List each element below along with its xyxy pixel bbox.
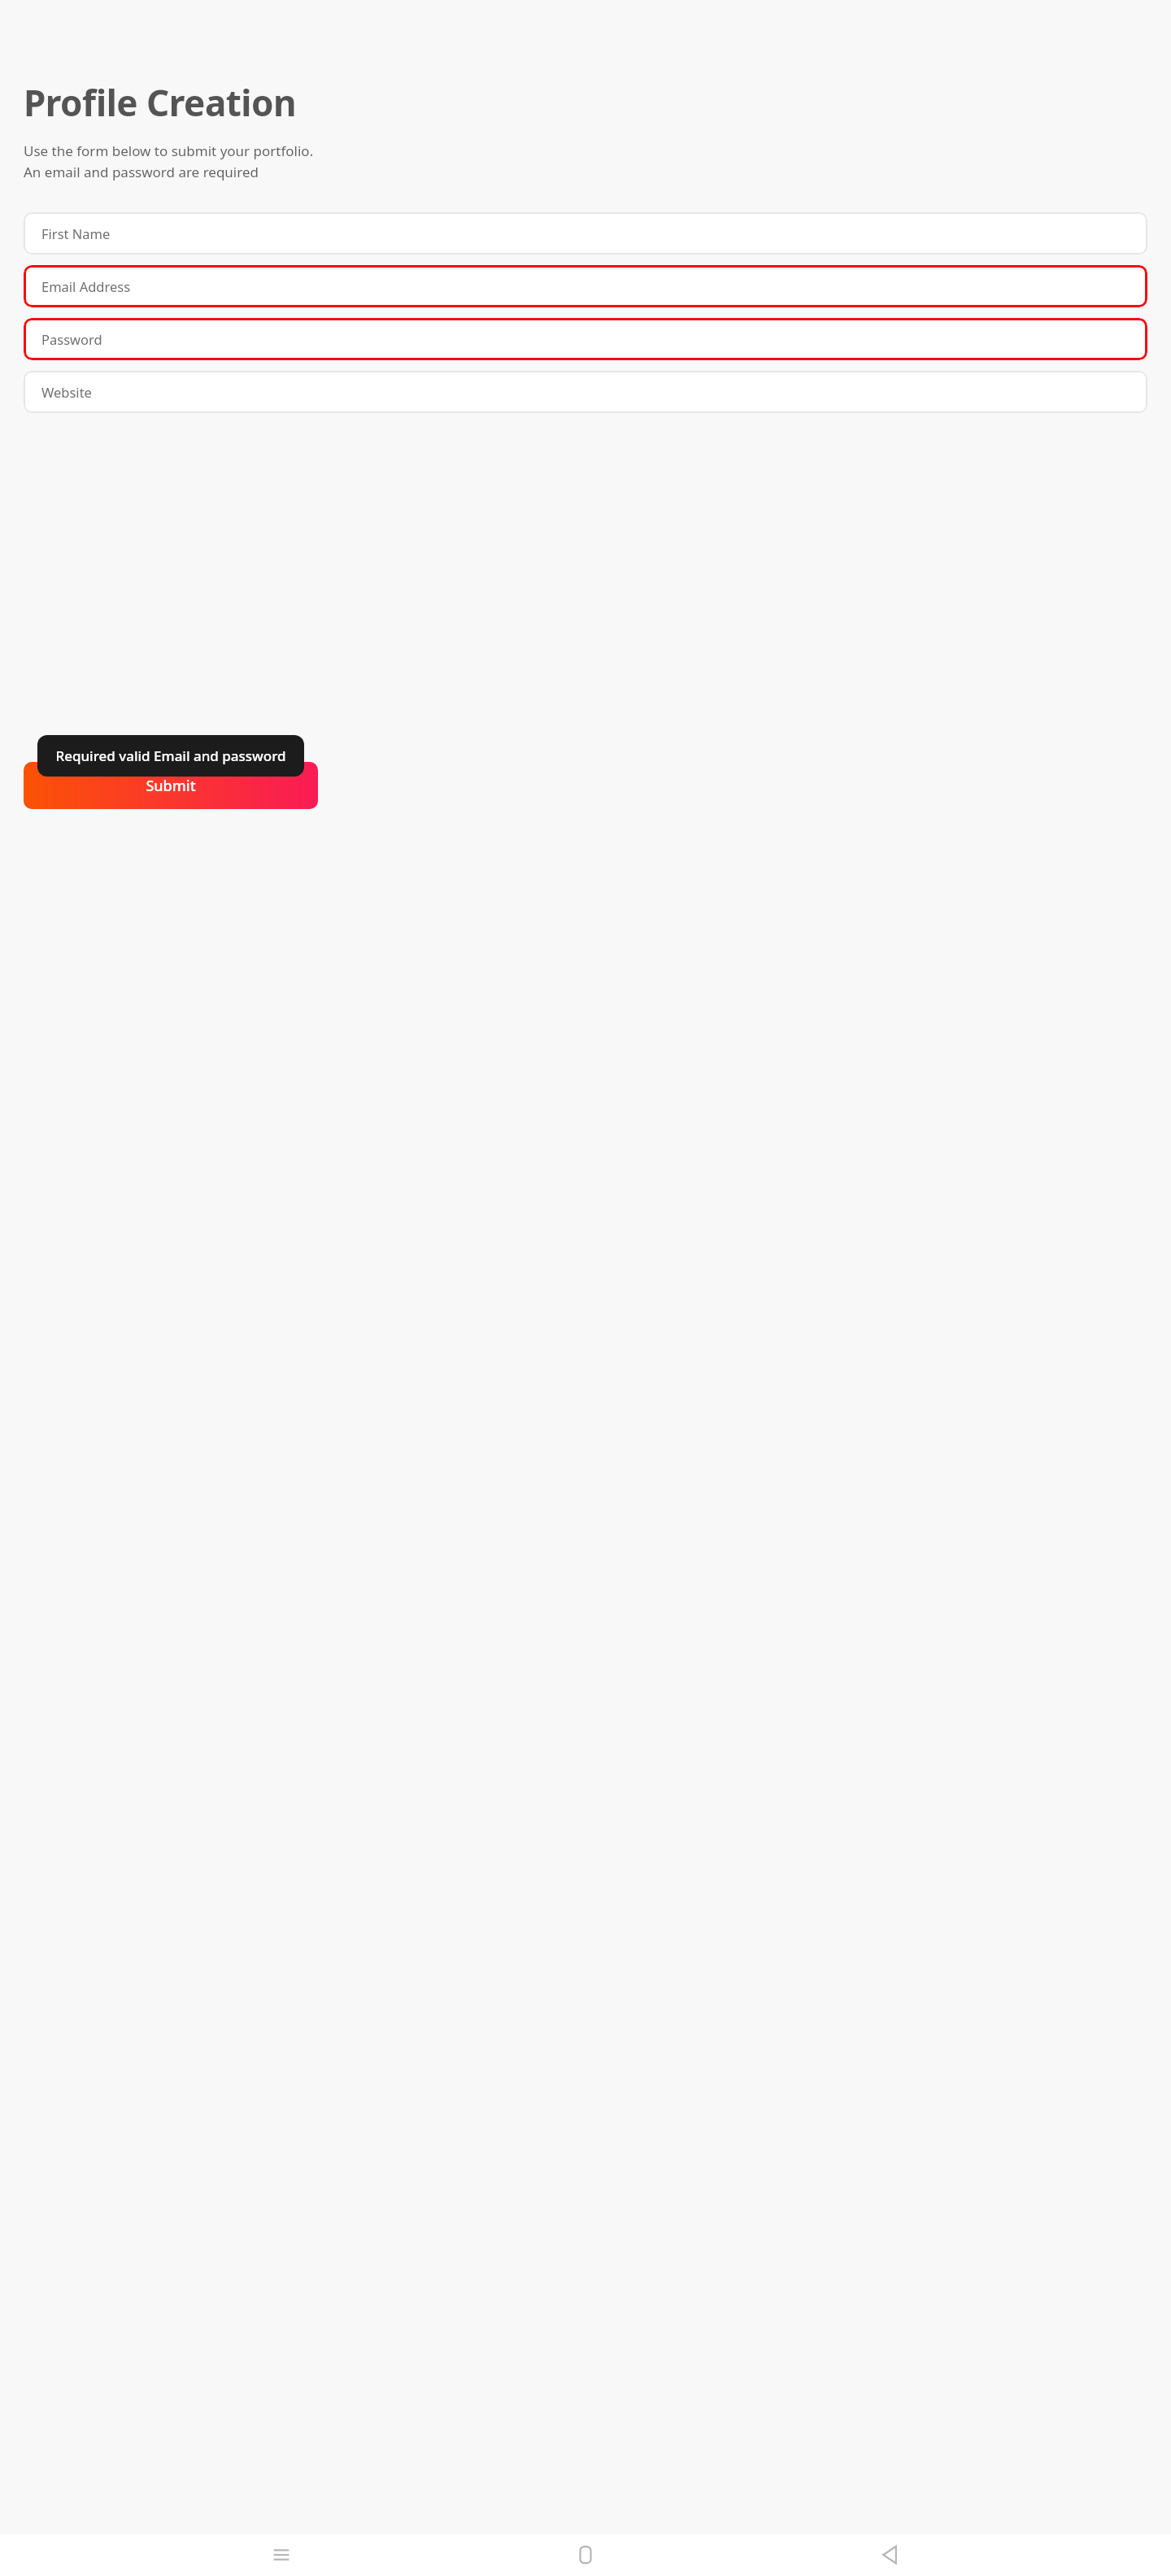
staticText: Profile Creation bbox=[24, 78, 297, 127]
button[interactable]: First Name bbox=[24, 212, 1147, 255]
button[interactable]: Submit bbox=[24, 762, 318, 809]
staticText: Email Address bbox=[41, 277, 131, 295]
button[interactable]: Recent apps bbox=[259, 2534, 304, 2576]
staticText: Password bbox=[41, 330, 102, 348]
staticText: Use the form below to submit your portfo… bbox=[24, 141, 314, 181]
button[interactable]: Home bbox=[563, 2534, 608, 2576]
button[interactable]: Password bbox=[24, 318, 1147, 360]
button[interactable]: Website bbox=[24, 371, 1147, 413]
staticText: Website bbox=[41, 383, 92, 401]
staticText: First Name bbox=[41, 224, 111, 242]
button[interactable]: Back bbox=[867, 2534, 912, 2576]
button[interactable]: Email Address bbox=[24, 265, 1147, 307]
staticText: Submit bbox=[146, 776, 196, 796]
staticText: Required valid Email and password bbox=[55, 746, 286, 765]
